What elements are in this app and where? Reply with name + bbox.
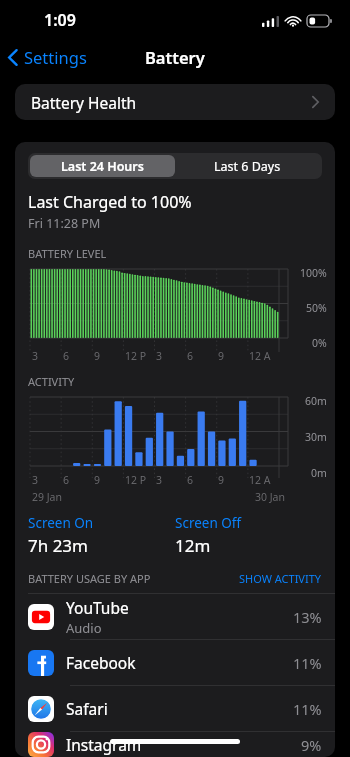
staticText: 12m xyxy=(175,534,211,557)
staticText: Last Charged to 100% xyxy=(28,191,192,213)
button[interactable]: Safari xyxy=(15,686,335,732)
staticText: 3 xyxy=(32,473,39,487)
button[interactable]: Battery Health xyxy=(15,84,335,120)
staticText: 9% xyxy=(301,735,322,755)
button[interactable]: YouTube xyxy=(15,594,335,640)
button[interactable]: Instagram xyxy=(15,732,335,757)
staticText: Screen On xyxy=(28,514,94,532)
staticText: 50% xyxy=(306,301,327,315)
button[interactable]: Screen Off xyxy=(175,514,322,557)
staticText: 6 xyxy=(63,349,70,363)
staticText: 3 xyxy=(32,349,39,363)
staticText: 29 Jan xyxy=(32,490,62,504)
button[interactable]: Settings xyxy=(0,43,95,71)
staticText: 9 xyxy=(94,473,101,487)
staticText: BATTERY USAGE BY APP xyxy=(28,571,151,586)
staticText: SHOW ACTIVITY xyxy=(239,571,322,586)
button[interactable]: Facebook xyxy=(15,640,335,686)
staticText: 9 xyxy=(94,349,101,363)
staticText: Last 6 Days xyxy=(214,158,281,175)
staticText: 100% xyxy=(300,266,327,280)
staticText: Facebook xyxy=(66,652,136,673)
staticText: BATTERY LEVEL xyxy=(28,246,107,261)
staticText: 30m xyxy=(305,430,327,444)
staticText: 6 xyxy=(187,473,194,487)
staticText: Fri 11:28 PM xyxy=(28,215,101,232)
staticText: 3 xyxy=(156,349,163,363)
staticText: 12 A xyxy=(249,349,271,363)
staticText: YouTube xyxy=(66,597,129,618)
staticText: Settings xyxy=(24,46,87,68)
staticText: 12 P xyxy=(125,473,147,487)
staticText: Audio xyxy=(66,619,102,637)
staticText: Battery Health xyxy=(31,92,137,113)
staticText: 11% xyxy=(293,653,322,673)
button[interactable]: SHOW ACTIVITY xyxy=(239,571,322,586)
staticText: 6 xyxy=(187,349,194,363)
button[interactable]: Last 24 Hours xyxy=(30,155,175,177)
staticText: 6 xyxy=(63,473,70,487)
staticText: 13% xyxy=(293,607,322,627)
staticText: 11% xyxy=(293,699,322,719)
staticText: 30 Jan xyxy=(255,490,285,504)
staticText: 9 xyxy=(218,349,225,363)
staticText: 12 P xyxy=(125,349,147,363)
staticText: Last 24 Hours xyxy=(61,158,144,175)
button[interactable]: Last 6 Days xyxy=(175,155,320,177)
staticText: ACTIVITY xyxy=(28,374,75,389)
staticText: 1:09 xyxy=(44,9,76,31)
button[interactable]: Screen On xyxy=(28,514,175,557)
staticText: 7h 23m xyxy=(28,534,88,557)
staticText: Instagram xyxy=(66,734,142,755)
staticText: Safari xyxy=(66,698,108,719)
staticText: 12 A xyxy=(249,473,271,487)
staticText: Battery xyxy=(145,46,205,68)
staticText: 0% xyxy=(312,336,327,350)
staticText: 60m xyxy=(305,394,327,408)
staticText: 0m xyxy=(311,466,327,480)
staticText: 9 xyxy=(218,473,225,487)
staticText: 3 xyxy=(156,473,163,487)
staticText: Screen Off xyxy=(175,514,242,532)
